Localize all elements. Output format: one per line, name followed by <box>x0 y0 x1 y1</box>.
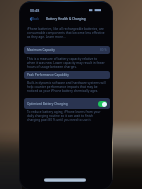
staticText: Peak Performance Capability <box>27 73 69 77</box>
button[interactable]: Optimized Battery Charging <box>24 98 110 109</box>
staticText: This is a measure of battery capacity re… <box>27 57 106 69</box>
button[interactable]: Maximum Capacity <box>24 46 110 54</box>
staticText: To reduce battery aging, iPhone learns f… <box>27 110 106 122</box>
staticText: Battery Health & Charging <box>46 17 86 21</box>
staticText: Optimized Battery Charging <box>27 102 68 106</box>
button[interactable]: Back <box>29 16 40 22</box>
staticText: Built-in dynamic software and hardware s… <box>27 81 106 93</box>
staticText: Back <box>32 17 39 21</box>
other: Optimized Battery Charging toggle <box>98 101 107 107</box>
staticText: Maximum Capacity <box>27 48 55 52</box>
staticText: 00:48 <box>30 8 40 13</box>
staticText: iPhone batteries, like all rechargeable … <box>27 27 106 39</box>
staticText: 80 % <box>100 48 107 52</box>
button[interactable]: Peak Performance Capability <box>24 71 110 79</box>
